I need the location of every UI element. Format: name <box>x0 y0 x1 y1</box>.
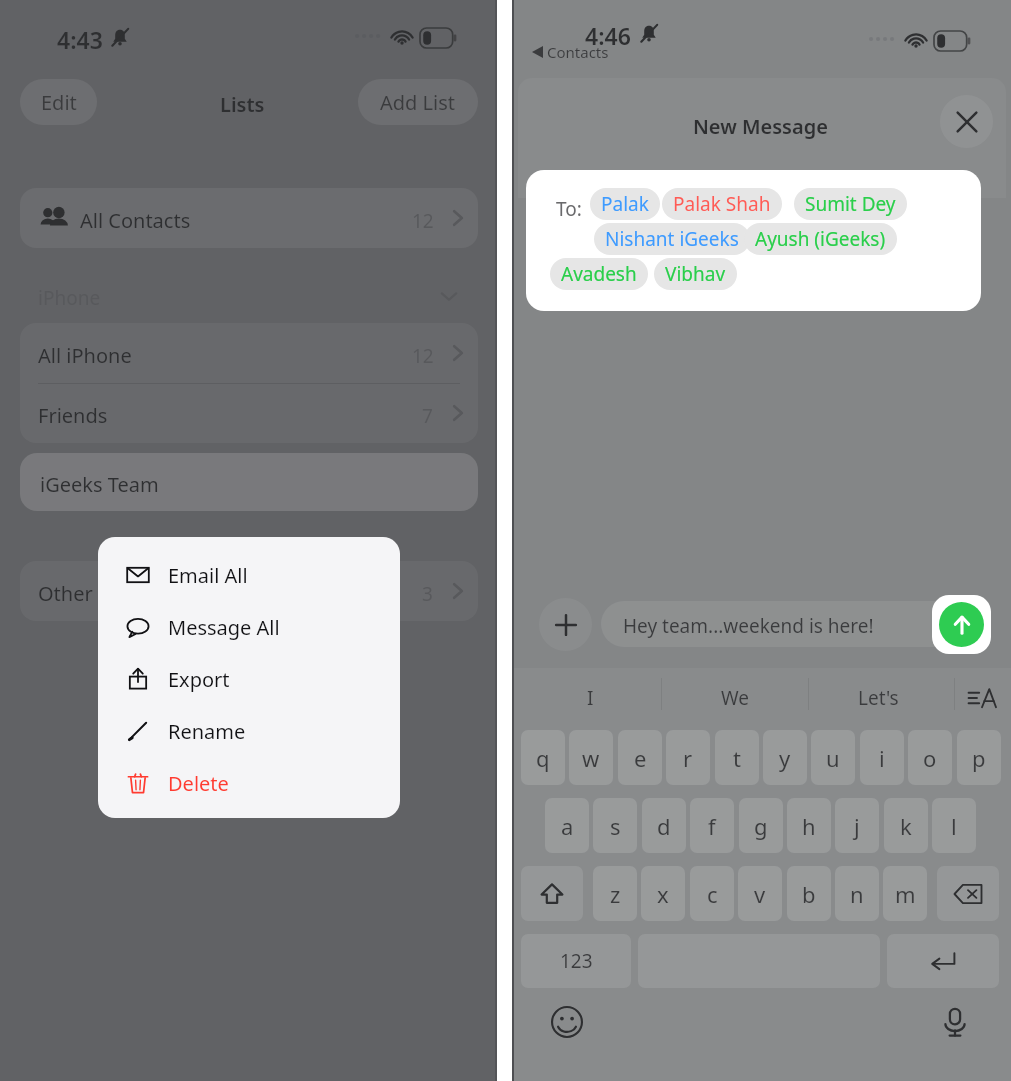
staticText: n <box>850 879 864 909</box>
staticText: iGeeks Team <box>40 471 159 498</box>
staticText: Delete <box>168 770 229 797</box>
button[interactable]: m <box>883 866 927 921</box>
button[interactable]: f <box>690 798 734 853</box>
button[interactable]: Export <box>98 653 400 705</box>
button[interactable]: c <box>690 866 734 921</box>
button[interactable]: Emoji <box>545 1000 589 1044</box>
button[interactable]: l <box>932 798 976 853</box>
staticText: All iPhone <box>38 342 132 369</box>
button[interactable]: i <box>860 730 904 785</box>
button[interactable]: Friends <box>20 383 478 443</box>
staticText: h <box>802 811 816 841</box>
staticText: a <box>561 811 574 841</box>
button[interactable]: All Contacts <box>20 188 478 248</box>
button[interactable]: 123 <box>521 934 631 988</box>
staticText: k <box>900 811 912 841</box>
staticText: g <box>754 811 768 841</box>
button[interactable]: d <box>642 798 686 853</box>
staticText: 123 <box>560 948 593 974</box>
button[interactable]: w <box>569 730 613 785</box>
staticText: Export <box>168 666 230 693</box>
button[interactable]: Shift <box>521 866 583 921</box>
staticText: New Message <box>693 113 828 140</box>
staticText: Rename <box>168 718 246 745</box>
staticText: m <box>895 879 916 909</box>
button[interactable]: To: <box>526 170 981 311</box>
button[interactable]: Sumit Dey <box>794 188 907 220</box>
staticText: To: <box>556 196 582 222</box>
staticText: 12 <box>412 208 434 234</box>
button[interactable]: Hey team...weekend is here! <box>601 601 991 647</box>
button[interactable]: iGeeks Team <box>20 453 478 511</box>
button[interactable]: p <box>957 730 1001 785</box>
button[interactable]: Avadesh <box>550 258 648 290</box>
button[interactable]: s <box>593 798 637 853</box>
staticText: c <box>707 879 718 909</box>
staticText: Add List <box>380 89 456 116</box>
button[interactable]: x <box>641 866 685 921</box>
button[interactable]: Palak Shah <box>662 188 782 220</box>
staticText: q <box>536 743 550 773</box>
staticText: e <box>634 743 647 773</box>
staticText: Avadesh <box>561 261 637 287</box>
button[interactable]: Other <box>20 561 478 621</box>
button[interactable]: n <box>835 866 879 921</box>
button[interactable]: h <box>787 798 831 853</box>
button[interactable]: Send <box>939 602 984 647</box>
staticText: 3 <box>422 581 433 607</box>
staticText: b <box>802 879 816 909</box>
button[interactable]: e <box>618 730 662 785</box>
staticText: v <box>754 879 766 909</box>
button[interactable]: Dictate <box>933 1000 977 1044</box>
button[interactable]: o <box>908 730 952 785</box>
button[interactable]: Vibhav <box>654 258 737 290</box>
staticText: i <box>879 743 885 773</box>
staticText: Edit <box>41 89 77 116</box>
staticText: 4:46 <box>585 20 631 51</box>
staticText: s <box>610 811 621 841</box>
button[interactable]: Add List <box>358 79 478 125</box>
staticText: 4:43 <box>57 24 103 55</box>
button[interactable]: Add attachment <box>539 598 592 651</box>
staticText: Palak <box>601 191 649 217</box>
button[interactable]: Close <box>940 95 993 148</box>
button[interactable]: b <box>787 866 831 921</box>
staticText: o <box>923 743 937 773</box>
staticText: Palak Shah <box>673 191 771 217</box>
button[interactable]: All iPhone <box>20 323 478 383</box>
staticText: u <box>826 743 840 773</box>
button[interactable]: j <box>835 798 879 853</box>
staticText: l <box>951 811 957 841</box>
staticText: f <box>708 811 716 841</box>
button[interactable]: t <box>715 730 759 785</box>
button[interactable]: Delete <box>98 757 400 809</box>
staticText: r <box>683 743 693 773</box>
button[interactable]: k <box>884 798 928 853</box>
button[interactable]: r <box>666 730 710 785</box>
button[interactable]: a <box>545 798 589 853</box>
staticText: Lists <box>220 91 265 118</box>
button[interactable]: Return <box>887 934 999 988</box>
button[interactable]: Edit <box>20 79 97 125</box>
button[interactable]: y <box>763 730 807 785</box>
staticText: Ayush (iGeeks) <box>755 226 886 252</box>
staticText: j <box>854 811 860 841</box>
button[interactable]: q <box>521 730 565 785</box>
staticText: w <box>582 743 600 773</box>
button[interactable]: Palak <box>590 188 660 220</box>
button[interactable]: Ayush (iGeeks) <box>744 223 897 255</box>
staticText: d <box>657 811 671 841</box>
button[interactable]: v <box>738 866 782 921</box>
button[interactable]: Message All <box>98 601 400 653</box>
button[interactable]: Rename <box>98 705 400 757</box>
button[interactable]: u <box>811 730 855 785</box>
button[interactable]: Backspace <box>937 866 999 921</box>
button[interactable]: Email All <box>98 549 400 601</box>
button[interactable]: g <box>739 798 783 853</box>
staticText: We <box>721 685 750 711</box>
button[interactable]: z <box>593 866 637 921</box>
button[interactable]: Nishant iGeeks <box>594 223 750 255</box>
staticText: 7 <box>422 403 433 429</box>
